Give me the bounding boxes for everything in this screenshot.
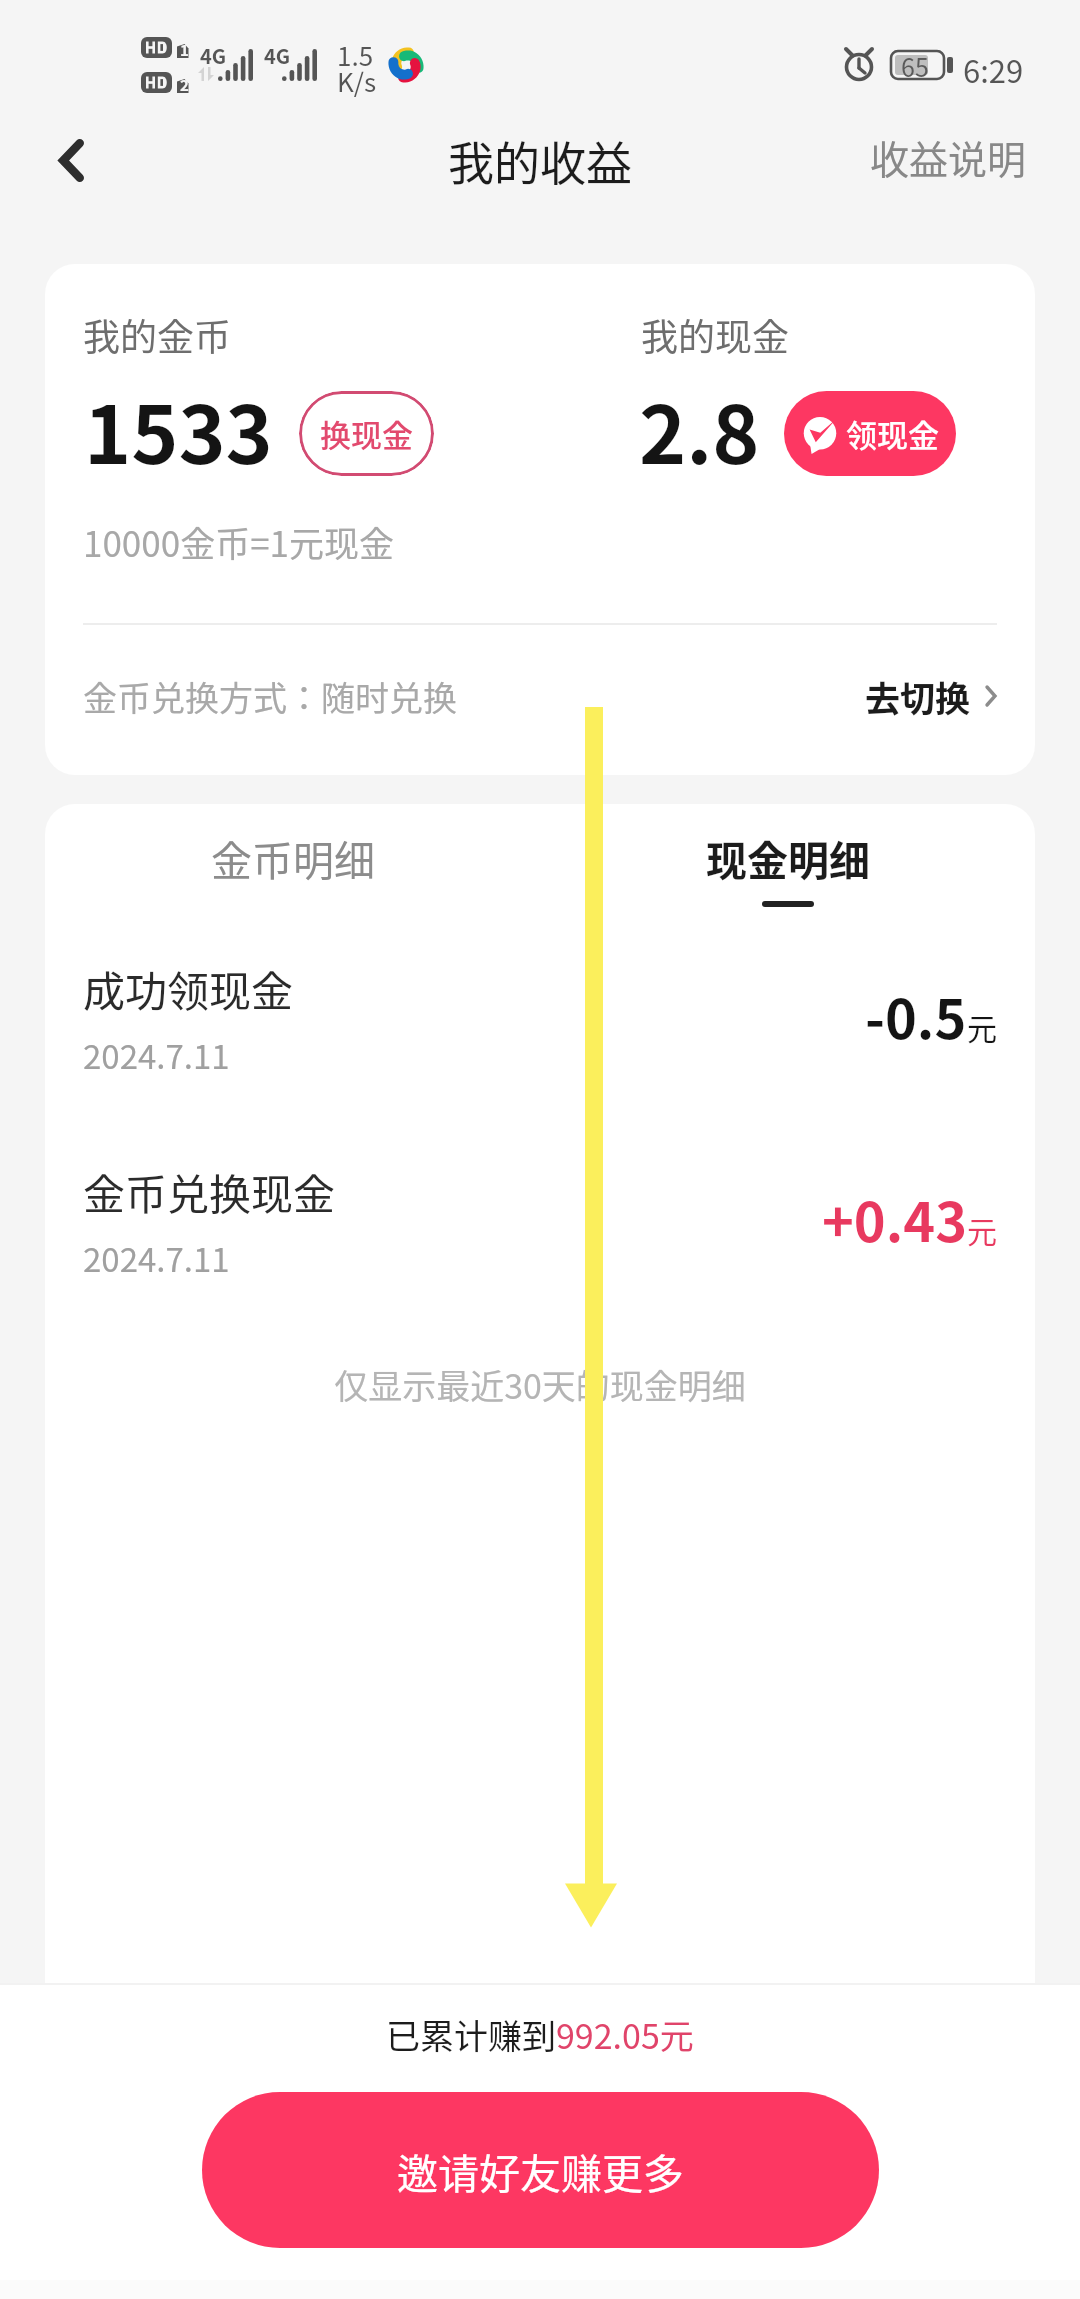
- staticText: 1: [180, 39, 189, 61]
- staticText: +0.43: [822, 1179, 967, 1257]
- staticText: 2024.7.11: [83, 1031, 230, 1079]
- staticText: 金币兑换现金: [83, 1161, 336, 1222]
- staticText: 领现金: [846, 411, 939, 456]
- staticText: 2024.7.11: [83, 1234, 230, 1282]
- staticText: 1.5: [337, 36, 374, 74]
- button[interactable]: 金币兑换现金: [45, 1159, 1035, 1279]
- button[interactable]: 金币明细: [45, 828, 540, 918]
- staticText: 10000金币=1元现金: [83, 516, 394, 567]
- staticText: 成功领现金: [83, 958, 294, 1019]
- staticText: 元: [967, 1005, 997, 1048]
- staticText: K/s: [337, 62, 377, 100]
- button[interactable]: Back: [16, 112, 126, 209]
- staticText: 金币明细: [211, 828, 375, 887]
- staticText: 65: [901, 48, 929, 84]
- staticText: 现金明细: [706, 828, 870, 887]
- button[interactable]: 现金明细: [540, 828, 1035, 958]
- staticText: 邀请好友赚更多: [397, 2141, 684, 2200]
- staticText: 收益说明: [870, 129, 1027, 185]
- button[interactable]: 收益说明: [840, 112, 1080, 209]
- staticText: 2: [180, 74, 189, 96]
- staticText: -0.5: [865, 976, 967, 1054]
- button[interactable]: 成功领现金: [45, 956, 1035, 1076]
- button[interactable]: 领现金: [784, 391, 956, 476]
- button[interactable]: 邀请好友赚更多: [202, 2092, 879, 2248]
- staticText: 元: [967, 1208, 997, 1251]
- staticText: 1533: [84, 371, 273, 487]
- button[interactable]: 金币兑换方式：随时兑换: [45, 621, 1035, 771]
- staticText: 去切换: [865, 671, 971, 722]
- staticText: 6:29: [963, 47, 1024, 92]
- staticText: 我的现金: [641, 308, 789, 362]
- staticText: 已累计赚到: [386, 2010, 556, 2059]
- staticText: 换现金: [320, 411, 413, 456]
- staticText: 2.8: [639, 371, 760, 487]
- staticText: 4G: [264, 41, 291, 70]
- staticText: 金币兑换方式：随时兑换: [83, 672, 457, 721]
- staticText: 我的收益: [448, 127, 632, 194]
- staticText: 992.05元: [556, 2010, 694, 2059]
- staticText: 我的金币: [83, 308, 231, 362]
- staticText: 4G: [200, 41, 227, 70]
- staticText: 仅显示最近30天的现金明细: [45, 1360, 1035, 1409]
- button[interactable]: 换现金: [299, 391, 434, 476]
